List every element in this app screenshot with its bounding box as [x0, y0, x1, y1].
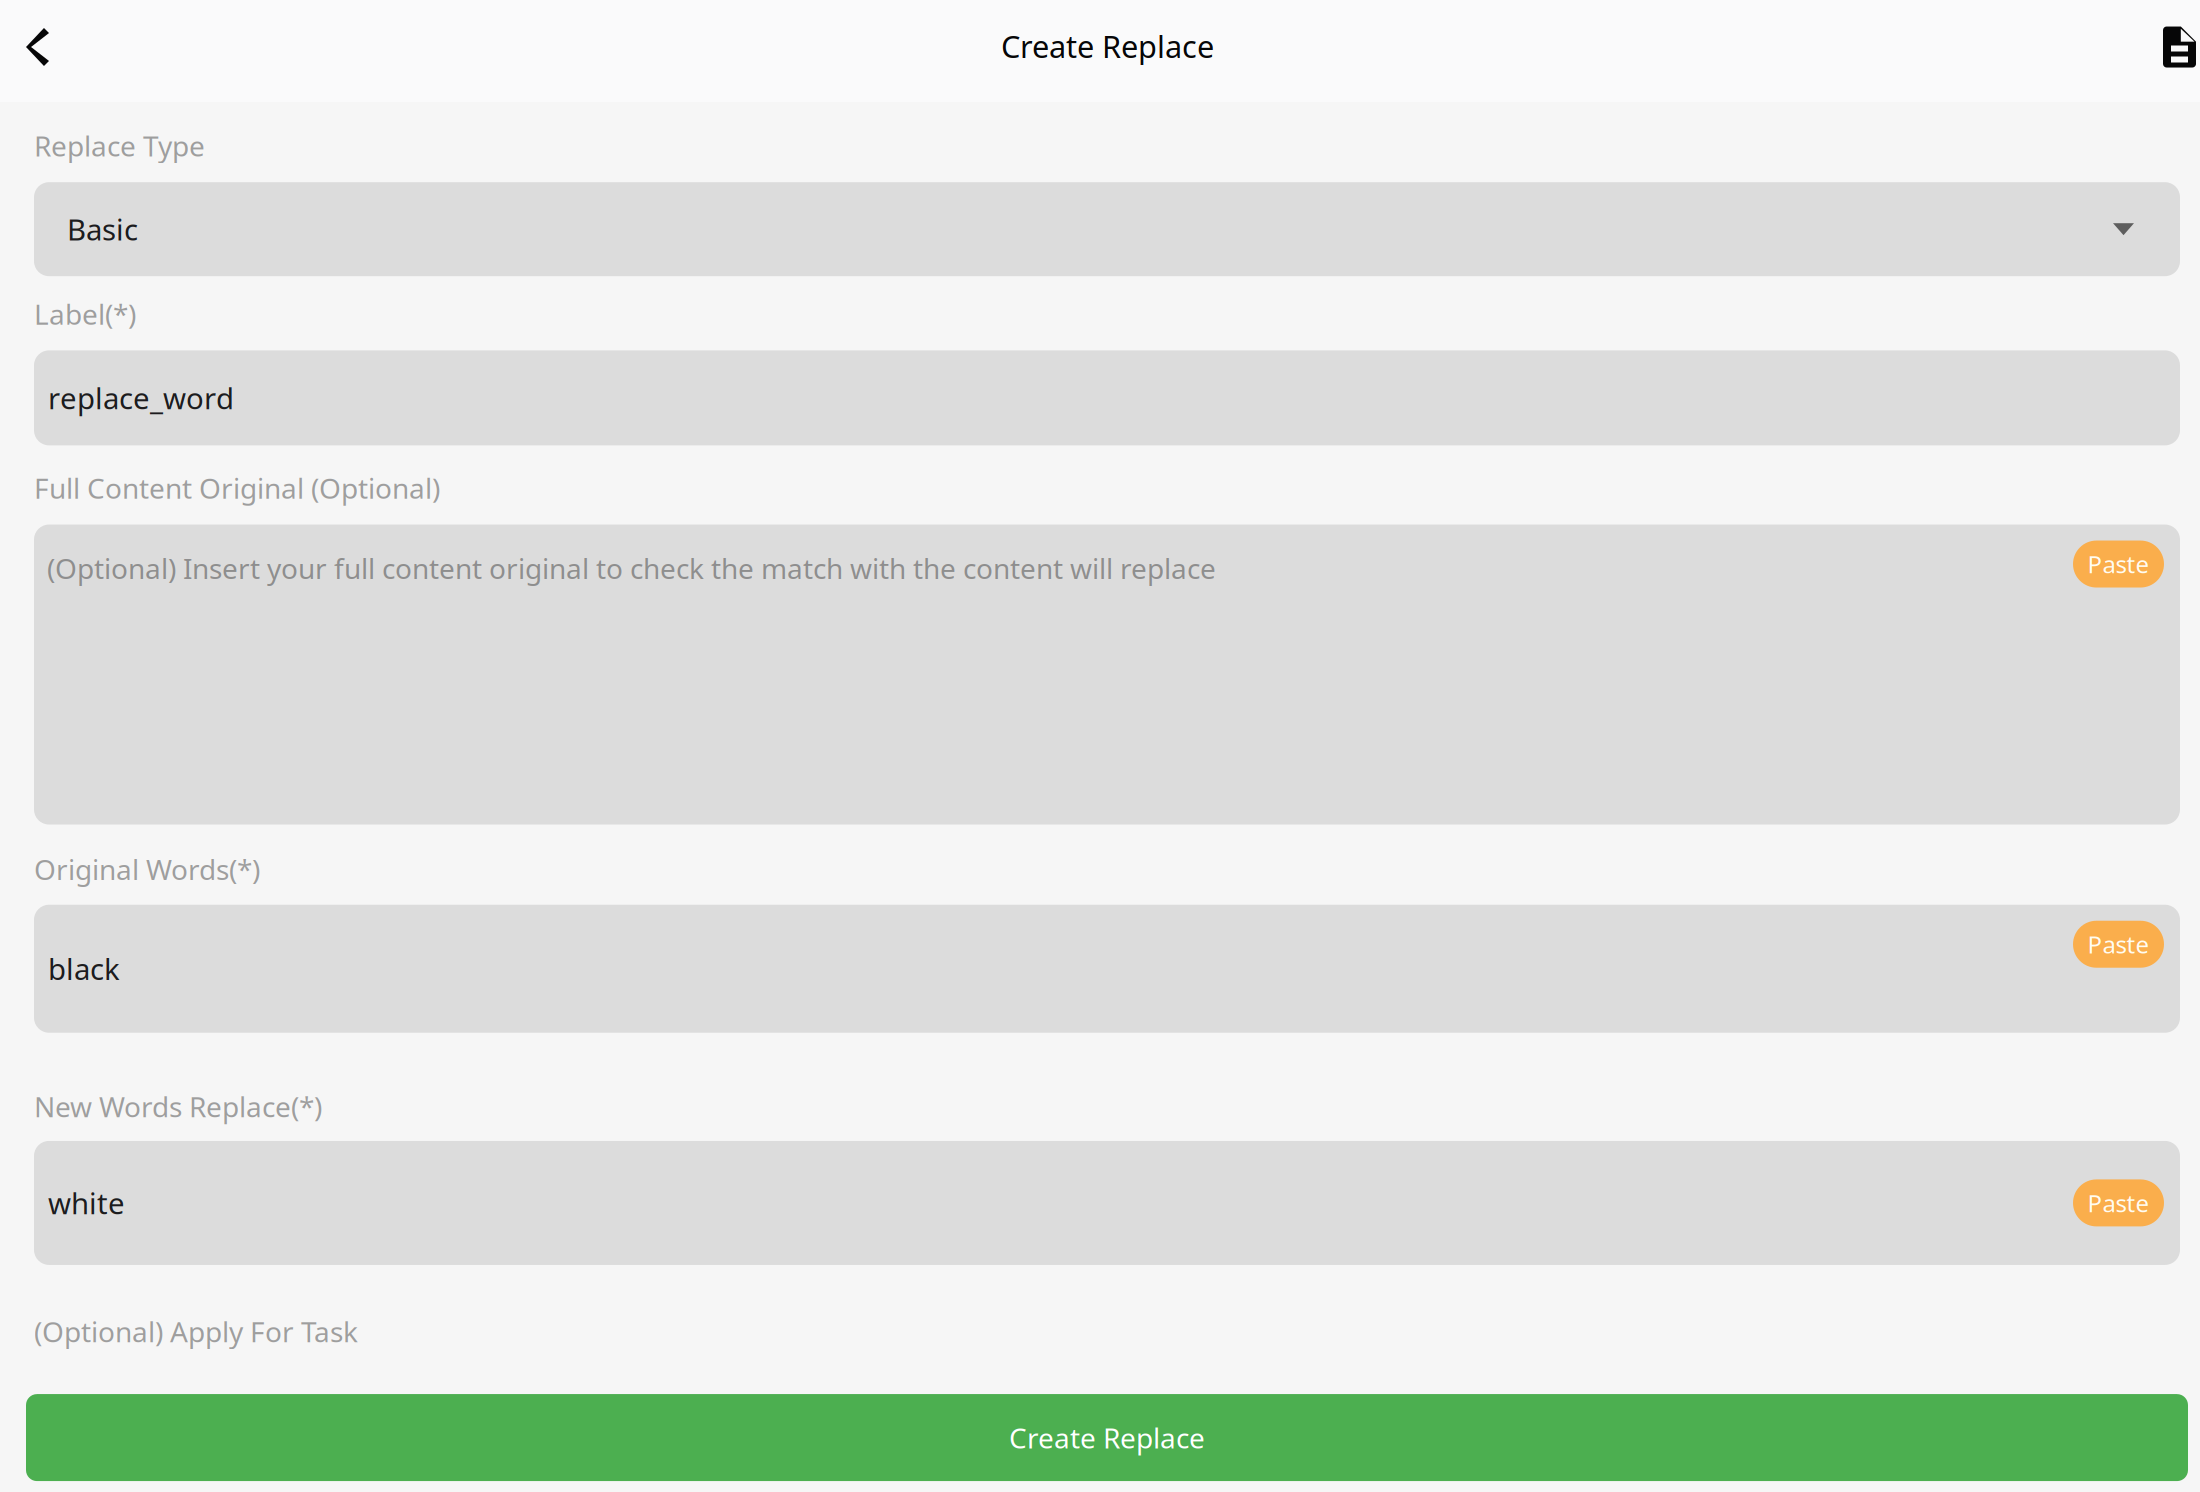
staticText: Paste [2087, 928, 2149, 960]
button[interactable]: Basic [34, 182, 2180, 276]
staticText: Paste [2087, 1187, 2149, 1219]
button[interactable]: Paste [2073, 1179, 2164, 1226]
staticText: replace_word [48, 378, 234, 417]
staticText: black [48, 949, 120, 988]
staticText: Label(*) [34, 295, 136, 332]
staticText: (Optional) Insert your full content orig… [47, 549, 1216, 587]
button[interactable]: replace_word [34, 350, 2180, 445]
staticText: Full Content Original (Optional) [34, 469, 440, 507]
button[interactable]: Documents [2145, 5, 2196, 89]
button[interactable]: black [34, 905, 2180, 1033]
staticText: Paste [2087, 548, 2149, 580]
button[interactable]: Paste [2073, 921, 2164, 968]
button[interactable]: (Optional) Insert your full content orig… [34, 524, 2180, 824]
staticText: New Words Replace(*) [34, 1088, 322, 1125]
staticText: Create Replace [1001, 26, 1214, 66]
staticText: Basic [67, 210, 138, 249]
staticText: Replace Type [34, 127, 205, 164]
button[interactable]: Back [12, 5, 63, 89]
button[interactable]: white [34, 1141, 2180, 1265]
staticText: Original Words(*) [34, 850, 260, 888]
button[interactable]: Paste [2073, 540, 2164, 587]
staticText: Create Replace [1009, 1419, 1205, 1456]
staticText: (Optional) Apply For Task [34, 1313, 358, 1350]
button[interactable]: Create Replace [26, 1394, 2188, 1481]
staticText: white [48, 1183, 125, 1222]
